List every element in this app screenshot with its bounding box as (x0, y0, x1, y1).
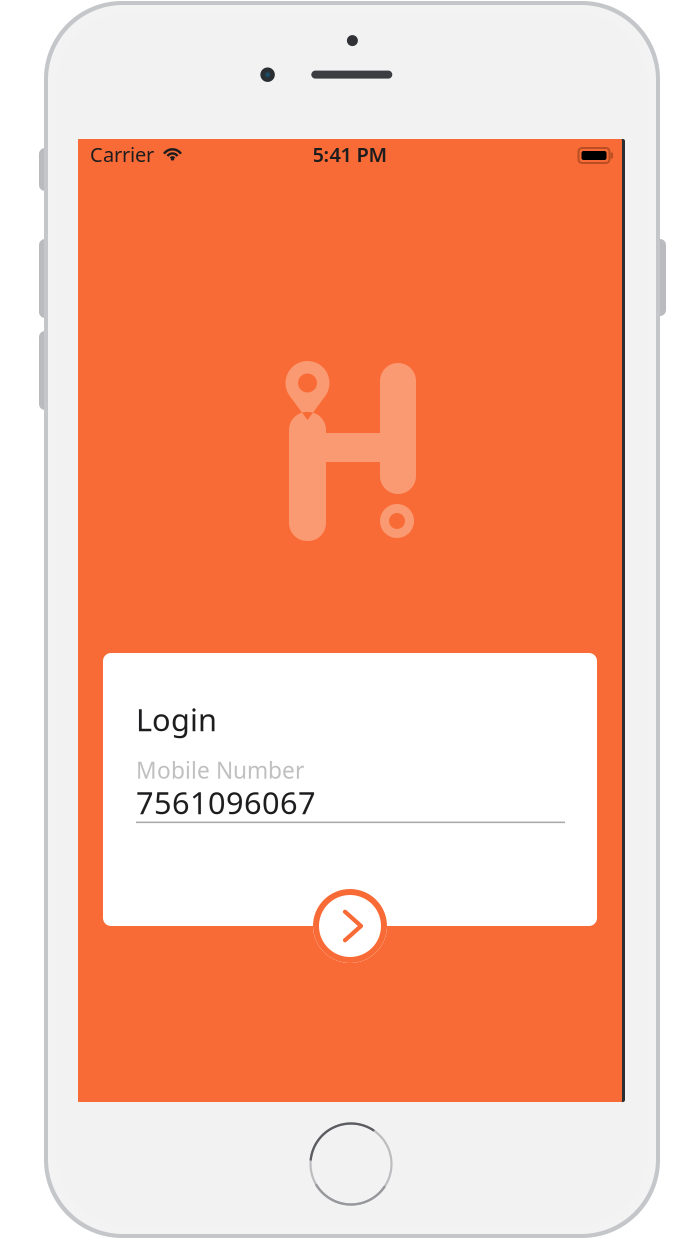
staticText: 7561096067 (136, 782, 316, 823)
staticText: Login (136, 699, 217, 740)
button[interactable]: Continue (313, 889, 387, 963)
staticText: 5:41 PM (312, 141, 387, 168)
staticText: Carrier (90, 141, 154, 168)
staticText: Mobile Number (136, 755, 304, 785)
